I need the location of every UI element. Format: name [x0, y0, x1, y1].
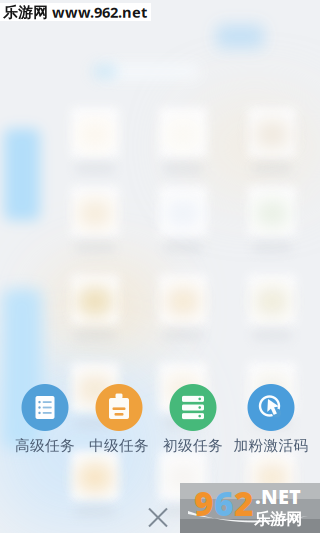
staticText: 9	[194, 481, 214, 525]
staticText: 加粉激活码	[233, 436, 308, 454]
staticText: 高级任务	[15, 436, 75, 454]
staticText: 中级任务	[89, 436, 149, 454]
staticText: 6	[214, 481, 234, 525]
staticText: .NET	[255, 483, 301, 509]
button[interactable]: 中级任务	[89, 384, 149, 453]
button[interactable]: 加粉激活码	[233, 384, 308, 453]
button[interactable]: 初级任务	[163, 384, 223, 453]
button[interactable]: 高级任务	[15, 384, 75, 453]
staticText: 乐游网	[254, 509, 302, 529]
staticText: 初级任务	[163, 436, 223, 454]
button[interactable]: Close	[136, 495, 180, 533]
staticText: 乐游网 www.962.net	[3, 2, 147, 22]
staticText: 2	[234, 481, 254, 525]
